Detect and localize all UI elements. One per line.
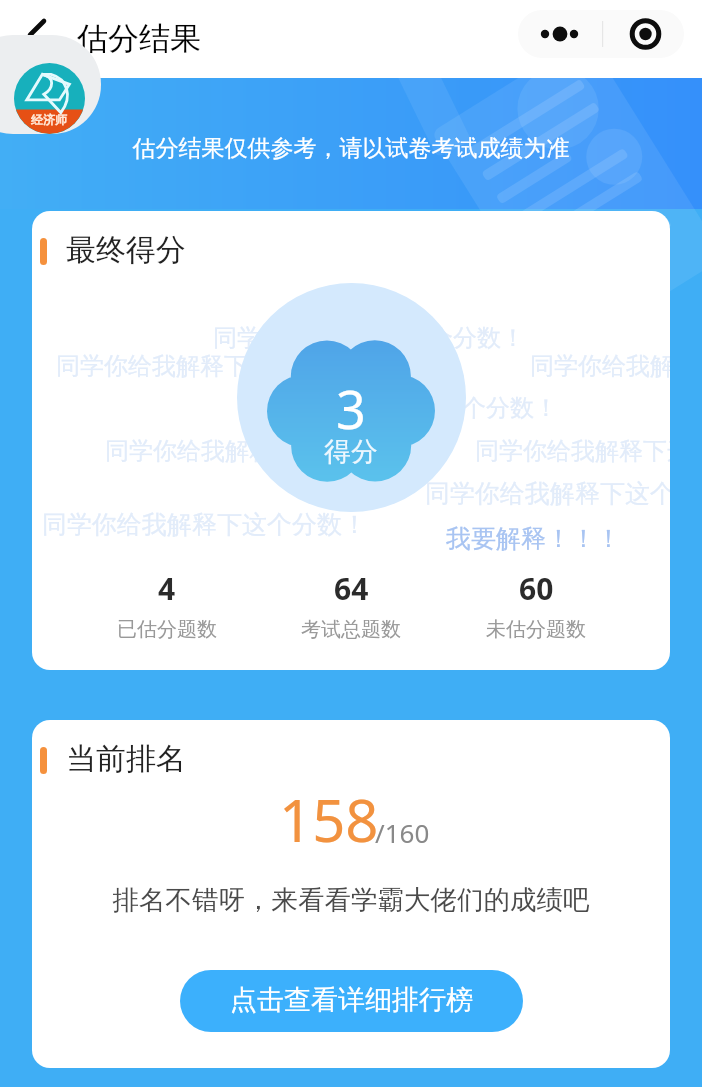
button[interactable]: Back [9,4,65,60]
staticText: 同学你给我解释下这个分数！ [475,436,670,466]
staticText: 得分 [324,435,378,469]
staticText: 158 [279,780,379,859]
staticText: 我要解释！！！ [446,523,621,554]
button[interactable]: 点击查看详细排行榜 [180,970,523,1032]
staticText: 同学你给我解释下这个分数！ [56,351,368,381]
staticText: 60 [519,568,554,609]
staticText: 同学你给我解释下这个分数！ [425,478,670,509]
staticText: 3 [336,373,366,444]
staticText: 4 [158,568,176,609]
staticText: 同学你给我解释下这个分数！ [213,323,525,353]
staticText: 同学你给我解释下这个分数！ [105,436,417,466]
staticText: 当前排名 [66,740,186,778]
staticText: /160 [375,815,430,850]
staticText: 点击查看详细排行榜 [230,983,473,1017]
staticText: 最终得分 [66,231,186,269]
staticText: 同学你给我解释下这个分数！ [246,393,558,423]
button[interactable]: More options [518,10,684,58]
staticText: 同学你给我解释下这个分数！ [530,351,670,381]
staticText: 未估分题数 [486,617,586,642]
staticText: 排名不错呀，来看看学霸大佬们的成绩吧 [32,883,670,916]
staticText: 经济师 [31,112,67,127]
staticText: 估分结果 [77,19,201,58]
staticText: 同学你给我解释下这个分数！ [42,509,367,540]
staticText: 估分结果仅供参考，请以试卷考试成绩为准 [0,134,702,163]
staticText: 考试总题数 [301,617,401,642]
staticText: 已估分题数 [117,617,217,642]
staticText: 64 [334,568,369,609]
